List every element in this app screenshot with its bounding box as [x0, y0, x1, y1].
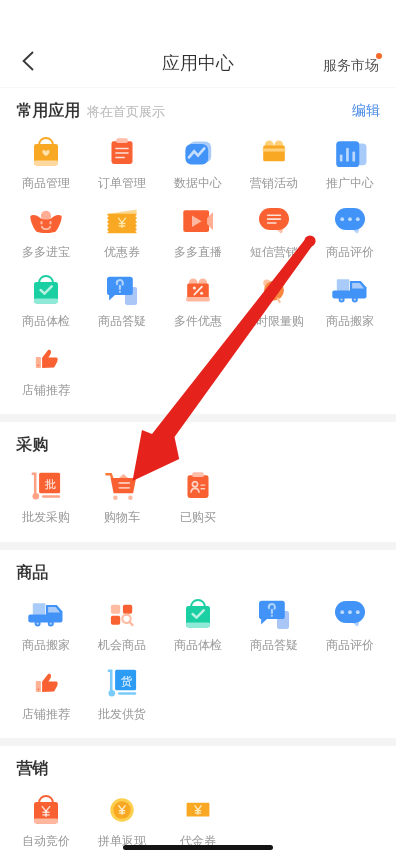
staticText: 短信营销 — [250, 244, 298, 259]
staticText: 自动竞价 — [22, 833, 70, 848]
button[interactable]: Back — [6, 39, 50, 83]
staticText: 商品答疑 — [98, 313, 146, 328]
staticText: 商品搬家 — [326, 313, 374, 328]
staticText: 店铺推荐 — [22, 706, 70, 721]
button[interactable]: 营销活动 — [250, 137, 298, 206]
button[interactable]: 商品评价 — [326, 599, 374, 668]
staticText: 多件优惠 — [174, 313, 222, 328]
button[interactable]: 购物车 — [104, 471, 140, 540]
staticText: 批发供货 — [98, 706, 146, 721]
button[interactable]: 商品搬家 — [22, 599, 70, 668]
staticText: 常用应用 — [16, 101, 80, 121]
staticText: 商品评价 — [326, 244, 374, 259]
staticText: 批发采购 — [22, 509, 70, 524]
button[interactable]: 店铺推荐 — [22, 668, 70, 737]
button[interactable]: 优惠券 — [104, 206, 140, 275]
staticText: 拼单返现 — [98, 833, 146, 848]
button[interactable]: 商品体检 — [22, 275, 70, 344]
button[interactable]: 多多进宝 — [22, 206, 70, 275]
button[interactable]: 代金券 — [180, 795, 216, 858]
button[interactable]: 货 — [98, 668, 146, 737]
button[interactable]: 商品评价 — [326, 206, 374, 275]
staticText: 应用中心 — [162, 52, 234, 75]
button[interactable]: 多多直播 — [174, 206, 222, 275]
button[interactable]: 商品管理 — [22, 137, 70, 206]
button[interactable]: 拼单返现 — [98, 795, 146, 858]
button[interactable]: 自动竞价 — [22, 795, 70, 858]
button[interactable]: 已购买 — [180, 471, 216, 540]
button[interactable]: 商品答疑 — [98, 275, 146, 344]
staticText: 批 — [45, 477, 56, 491]
staticText: 推广中心 — [326, 175, 374, 190]
staticText: 代金券 — [180, 833, 216, 848]
button[interactable]: 商品体检 — [174, 599, 222, 668]
button[interactable]: 商品答疑 — [250, 599, 298, 668]
staticText: 数据中心 — [174, 175, 222, 190]
staticText: 购物车 — [104, 509, 140, 524]
staticText: 商品搬家 — [22, 637, 70, 652]
button[interactable]: 数据中心 — [174, 137, 222, 206]
button[interactable]: 编辑 — [352, 102, 380, 120]
staticText: 订单管理 — [98, 175, 146, 190]
staticText: 商品体检 — [22, 313, 70, 328]
button[interactable]: 机会商品 — [98, 599, 146, 668]
staticText: 商品体检 — [174, 637, 222, 652]
staticText: 多多进宝 — [22, 244, 70, 259]
staticText: 将在首页展示 — [87, 103, 165, 119]
staticText: 商品管理 — [22, 175, 70, 190]
button[interactable]: 服务市场 — [323, 47, 396, 75]
staticText: 已购买 — [180, 509, 216, 524]
staticText: 营销活动 — [250, 175, 298, 190]
staticText: 编辑 — [352, 102, 380, 120]
staticText: 营销 — [16, 759, 48, 779]
staticText: 货 — [121, 674, 132, 688]
staticText: 采购 — [16, 435, 48, 455]
staticText: 商品评价 — [326, 637, 374, 652]
staticText: 商品 — [16, 563, 48, 583]
button[interactable]: 订单管理 — [98, 137, 146, 206]
staticText: 服务市场 — [323, 57, 379, 75]
staticText: 机会商品 — [98, 637, 146, 652]
staticText: 店铺推荐 — [22, 382, 70, 397]
staticText: 多多直播 — [174, 244, 222, 259]
button[interactable]: 多件优惠 — [174, 275, 222, 344]
button[interactable]: 批 — [22, 471, 70, 540]
button[interactable]: 店铺推荐 — [22, 344, 70, 413]
button[interactable]: 推广中心 — [326, 137, 374, 206]
button[interactable]: 限时限量购 — [244, 275, 304, 344]
staticText: 商品答疑 — [250, 637, 298, 652]
button[interactable]: 短信营销 — [250, 206, 298, 275]
staticText: 限时限量购 — [244, 313, 304, 328]
button[interactable]: 商品搬家 — [326, 275, 374, 344]
staticText: 优惠券 — [104, 244, 140, 259]
